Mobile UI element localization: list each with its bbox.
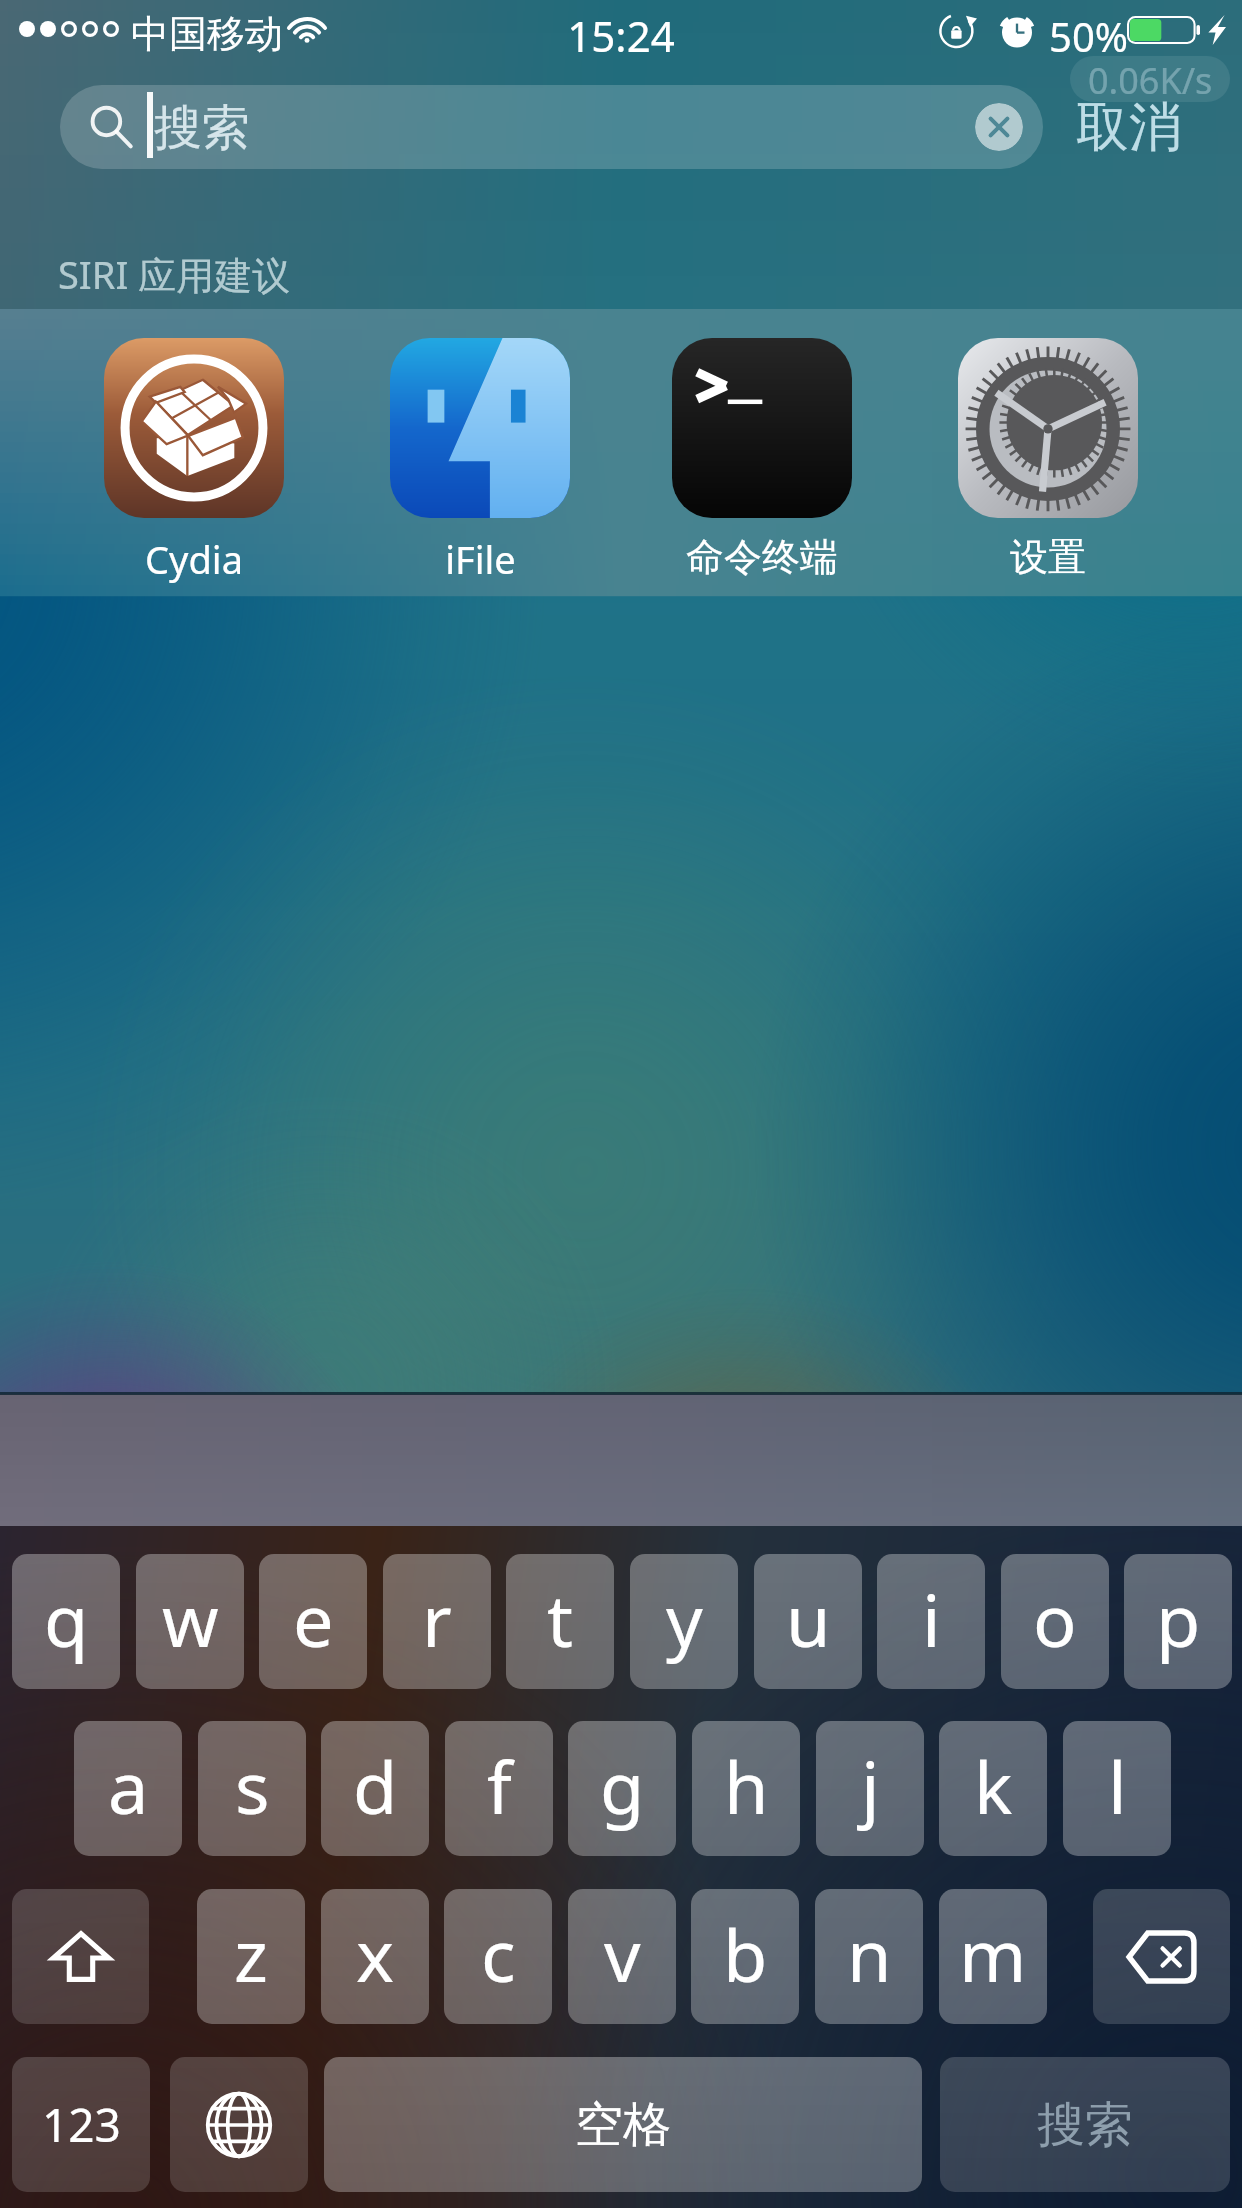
staticText: iFile [445, 533, 516, 585]
button[interactable]: g [568, 1721, 676, 1856]
button[interactable]: 搜索 [940, 2057, 1230, 2192]
staticText: f [487, 1737, 512, 1835]
button[interactable]: 删除 [1093, 1889, 1230, 2024]
button[interactable]: p [1124, 1554, 1232, 1689]
button[interactable]: Cydia [74, 330, 314, 575]
staticText: t [547, 1570, 573, 1668]
button[interactable]: 取消 [1062, 84, 1196, 170]
staticText: n [847, 1905, 892, 2003]
staticText: g [600, 1737, 645, 1835]
button[interactable]: q [12, 1554, 120, 1689]
button[interactable]: 搜索 [60, 85, 1043, 169]
button[interactable]: m [939, 1889, 1047, 2024]
button[interactable]: o [1001, 1554, 1109, 1689]
button[interactable]: c [444, 1889, 552, 2024]
button[interactable]: 数字键盘 [12, 2057, 150, 2192]
button[interactable]: n [815, 1889, 923, 2024]
staticText: l [1108, 1737, 1127, 1835]
button[interactable]: 清除 [975, 103, 1023, 151]
staticText: k [974, 1737, 1013, 1835]
button[interactable]: j [816, 1721, 924, 1856]
staticText: Cydia [145, 533, 243, 585]
button[interactable]: l [1063, 1721, 1171, 1856]
staticText: p [1156, 1570, 1201, 1668]
staticText: 取消 [1076, 94, 1182, 161]
staticText: a [108, 1737, 149, 1835]
button[interactable]: 设置 [928, 330, 1168, 575]
staticText: 搜索 [1037, 2095, 1133, 2155]
staticText: o [1033, 1570, 1077, 1668]
button[interactable]: d [321, 1721, 429, 1856]
staticText: 15:24 [0, 7, 1242, 64]
staticText: 50% [1049, 9, 1128, 63]
staticText: z [234, 1905, 268, 2003]
staticText: h [724, 1737, 769, 1835]
staticText: e [293, 1570, 334, 1668]
staticText: 0.06K/s [1088, 56, 1213, 102]
button[interactable]: s [198, 1721, 306, 1856]
staticText: 空格 [575, 2095, 671, 2155]
staticText: 搜索 [154, 98, 250, 158]
staticText: j [861, 1737, 880, 1835]
staticText: y [666, 1570, 703, 1668]
button[interactable]: b [691, 1889, 799, 2024]
staticText: x [356, 1905, 395, 2003]
staticText: q [44, 1570, 89, 1668]
button[interactable]: y [630, 1554, 738, 1689]
button[interactable]: x [321, 1889, 429, 2024]
button[interactable]: i [877, 1554, 985, 1689]
staticText: SIRI 应用建议 [58, 248, 291, 300]
button[interactable]: k [939, 1721, 1047, 1856]
staticText: 中国移动 [131, 10, 283, 58]
button[interactable]: iFile [360, 330, 600, 575]
staticText: 123 [42, 2093, 121, 2156]
staticText: m [959, 1905, 1027, 2003]
staticText: w [162, 1570, 219, 1668]
button[interactable]: 切换键盘 [170, 2057, 308, 2192]
staticText: r [422, 1570, 452, 1668]
button[interactable]: v [568, 1889, 676, 2024]
button[interactable]: a [74, 1721, 182, 1856]
button[interactable]: w [136, 1554, 244, 1689]
staticText: 命令终端 [686, 533, 838, 581]
staticText: u [786, 1570, 831, 1668]
button[interactable]: z [197, 1889, 305, 2024]
button[interactable]: 空格 [324, 2057, 922, 2192]
staticText: c [481, 1905, 516, 2003]
button[interactable]: r [383, 1554, 491, 1689]
button[interactable]: u [754, 1554, 862, 1689]
button[interactable]: f [445, 1721, 553, 1856]
staticText: i [922, 1570, 941, 1668]
staticText: v [604, 1905, 641, 2003]
staticText: d [353, 1737, 398, 1835]
button[interactable]: h [692, 1721, 800, 1856]
button[interactable]: Shift [12, 1889, 149, 2024]
staticText: s [235, 1737, 270, 1835]
staticText: b [723, 1905, 768, 2003]
button[interactable]: 命令终端 [642, 330, 882, 575]
button[interactable]: t [506, 1554, 614, 1689]
staticText: 设置 [1010, 533, 1086, 581]
button[interactable]: e [259, 1554, 367, 1689]
